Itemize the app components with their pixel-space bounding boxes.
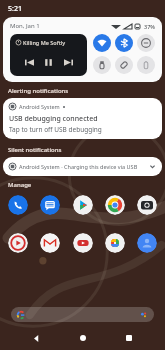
button[interactable]: Quick setting — [115, 56, 133, 74]
button[interactable]: Quick setting — [137, 56, 155, 74]
button[interactable]: Phone — [8, 195, 28, 215]
button[interactable]: Messages — [40, 195, 60, 215]
button[interactable]: Android System · Charging this device vi… — [3, 157, 162, 176]
button[interactable]: Quick setting — [93, 34, 111, 52]
staticText: 37% — [144, 23, 155, 30]
staticText: Mon, Jan 1 — [10, 22, 40, 30]
button[interactable]: Quick setting — [93, 56, 111, 74]
button[interactable]: Killing Me Softly — [10, 34, 87, 76]
button[interactable]: Camera — [137, 195, 157, 215]
button[interactable]: YouTube — [73, 233, 93, 253]
button[interactable]: Recents — [118, 330, 140, 346]
button[interactable]: Next — [62, 56, 75, 69]
button[interactable]: Android System — [3, 98, 162, 139]
button[interactable]: Pause — [42, 56, 55, 69]
staticText: Android System · Charging this device vi… — [19, 163, 138, 170]
button[interactable] — [11, 307, 154, 322]
staticText: USB debugging connected — [9, 114, 98, 124]
button[interactable]: Quick setting — [115, 34, 133, 52]
staticText: Alerting notifications — [8, 87, 69, 95]
button[interactable]: Play Store — [73, 195, 93, 215]
button[interactable]: Play Movies — [8, 233, 28, 253]
button[interactable]: Gmail — [40, 233, 60, 253]
button[interactable]: Photos — [105, 233, 125, 253]
staticText: Killing Me Softly — [23, 39, 66, 46]
button[interactable]: Contacts — [137, 233, 157, 253]
staticText: Android System — [19, 103, 60, 110]
staticText: 5:21 — [8, 4, 22, 14]
button[interactable]: Previous — [23, 56, 36, 69]
staticText: Tap to turn off USB debugging — [9, 125, 102, 134]
button[interactable]: Chrome — [105, 195, 125, 215]
button[interactable]: Home — [72, 330, 94, 346]
button[interactable]: Quick setting — [137, 34, 155, 52]
staticText: Manage — [8, 181, 32, 189]
staticText: Silent notifications — [8, 146, 62, 154]
button[interactable]: Back — [25, 330, 47, 346]
